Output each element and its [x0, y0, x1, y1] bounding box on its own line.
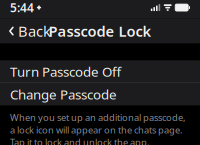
button[interactable]: Change Passcode	[0, 83, 200, 105]
staticText: 5:44	[10, 0, 34, 15]
button[interactable]: Turn Passcode Off	[0, 61, 200, 83]
button[interactable]: Back	[2, 19, 57, 43]
staticText: Turn Passcode Off	[10, 63, 121, 80]
staticText: When you set up an additional passcode, …	[10, 111, 186, 145]
staticText: Back	[18, 21, 51, 41]
staticText: Passcode Lock	[48, 21, 151, 41]
staticText: Change Passcode	[10, 85, 117, 103]
